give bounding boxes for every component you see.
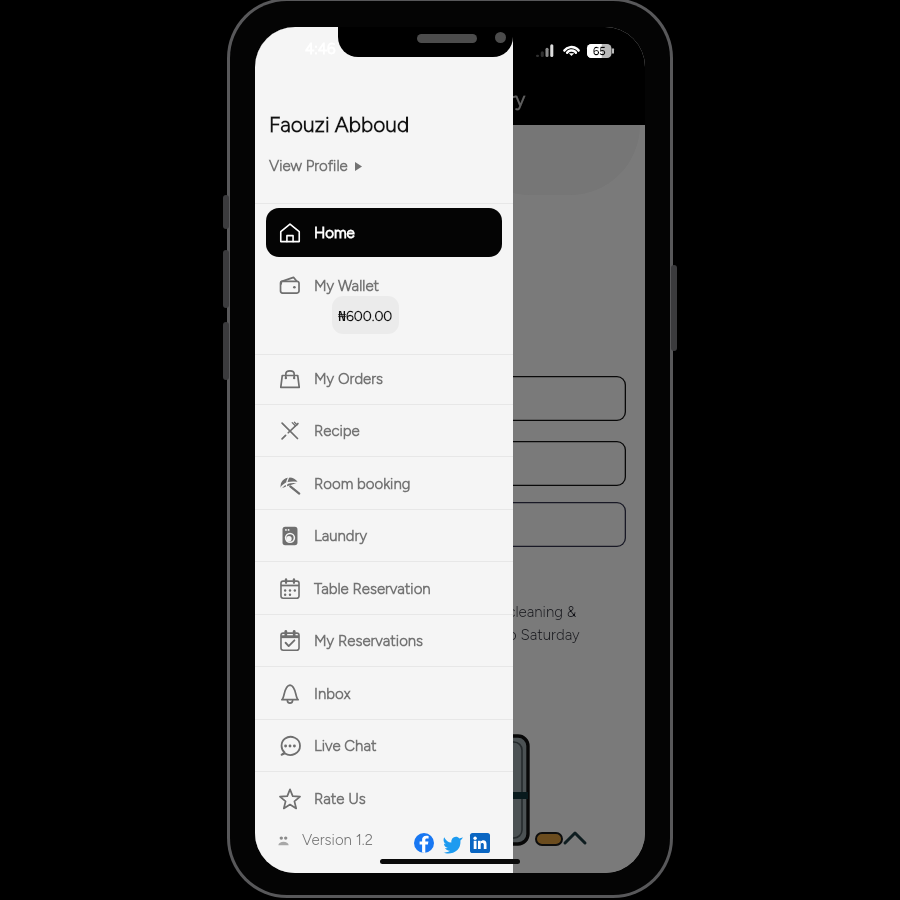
button[interactable]: Facebook — [414, 833, 434, 853]
button[interactable]: Select service — [275, 376, 626, 421]
staticText: Room booking — [314, 475, 411, 493]
staticText: Pickup date — [289, 455, 367, 473]
button[interactable]: Rate Us — [255, 772, 513, 825]
staticText: Inbox — [314, 685, 351, 703]
staticText: My Reservations — [314, 632, 424, 650]
button[interactable]: Pickup date — [275, 441, 626, 486]
staticText: Live Chat — [314, 737, 377, 755]
staticText: Delivery address — [289, 516, 398, 534]
staticText: 65 — [593, 45, 606, 58]
button[interactable]: Delivery address — [275, 502, 626, 547]
staticText: View Profile — [269, 157, 348, 175]
staticText: Table Reservation — [314, 580, 431, 598]
button[interactable]: LinkedIn — [470, 833, 490, 853]
staticText: Version 1.2 — [302, 831, 373, 849]
staticText: ironing services, available Monday to Sa… — [275, 626, 580, 644]
button[interactable]: Room booking — [255, 457, 513, 510]
staticText: We provide quality laundry and dry clean… — [275, 603, 577, 621]
staticText: My Wallet — [314, 277, 380, 295]
button[interactable]: Inbox — [255, 667, 513, 720]
button[interactable]: My Wallet — [255, 263, 513, 354]
button[interactable]: Table Reservation — [255, 562, 513, 615]
button[interactable]: My Orders — [255, 352, 513, 405]
button[interactable]: Laundry — [255, 509, 513, 562]
button[interactable]: Live Chat — [255, 719, 513, 772]
staticText: Laundry — [314, 527, 367, 545]
staticText: Faouzi Abboud — [269, 112, 410, 137]
staticText: Home — [314, 224, 355, 242]
staticText: Laundry — [458, 88, 526, 111]
staticText: My Orders — [314, 370, 384, 388]
button[interactable]: Recipe — [255, 404, 513, 457]
staticText: Select service — [289, 390, 383, 408]
button[interactable]: Home — [266, 208, 502, 257]
staticText: Rate Us — [314, 790, 366, 808]
staticText: ₦600.00 — [338, 306, 393, 325]
button[interactable]: Twitter — [443, 833, 463, 853]
staticText: Recipe — [314, 422, 360, 440]
button[interactable]: My Reservations — [255, 614, 513, 667]
staticText: 4:46 — [305, 40, 336, 58]
button[interactable]: View Profile — [269, 157, 362, 175]
